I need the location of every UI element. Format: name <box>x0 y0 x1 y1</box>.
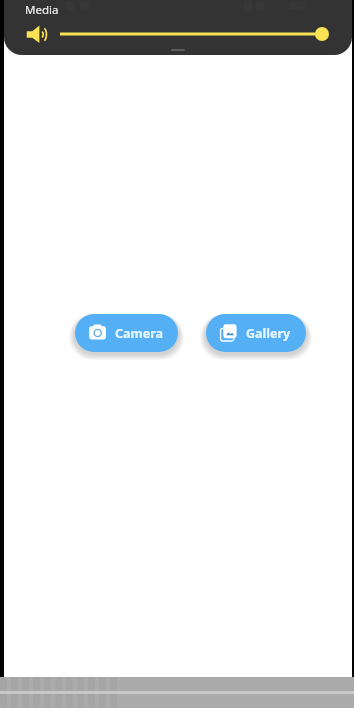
button[interactable]: Camera <box>75 314 178 352</box>
staticText: Gallery <box>246 325 291 342</box>
button[interactable]: Volume <box>24 22 49 47</box>
button[interactable]: Media volume <box>56 24 340 44</box>
staticText: Media <box>25 2 59 18</box>
button[interactable]: Gallery <box>206 314 306 352</box>
staticText: Camera <box>115 325 163 342</box>
